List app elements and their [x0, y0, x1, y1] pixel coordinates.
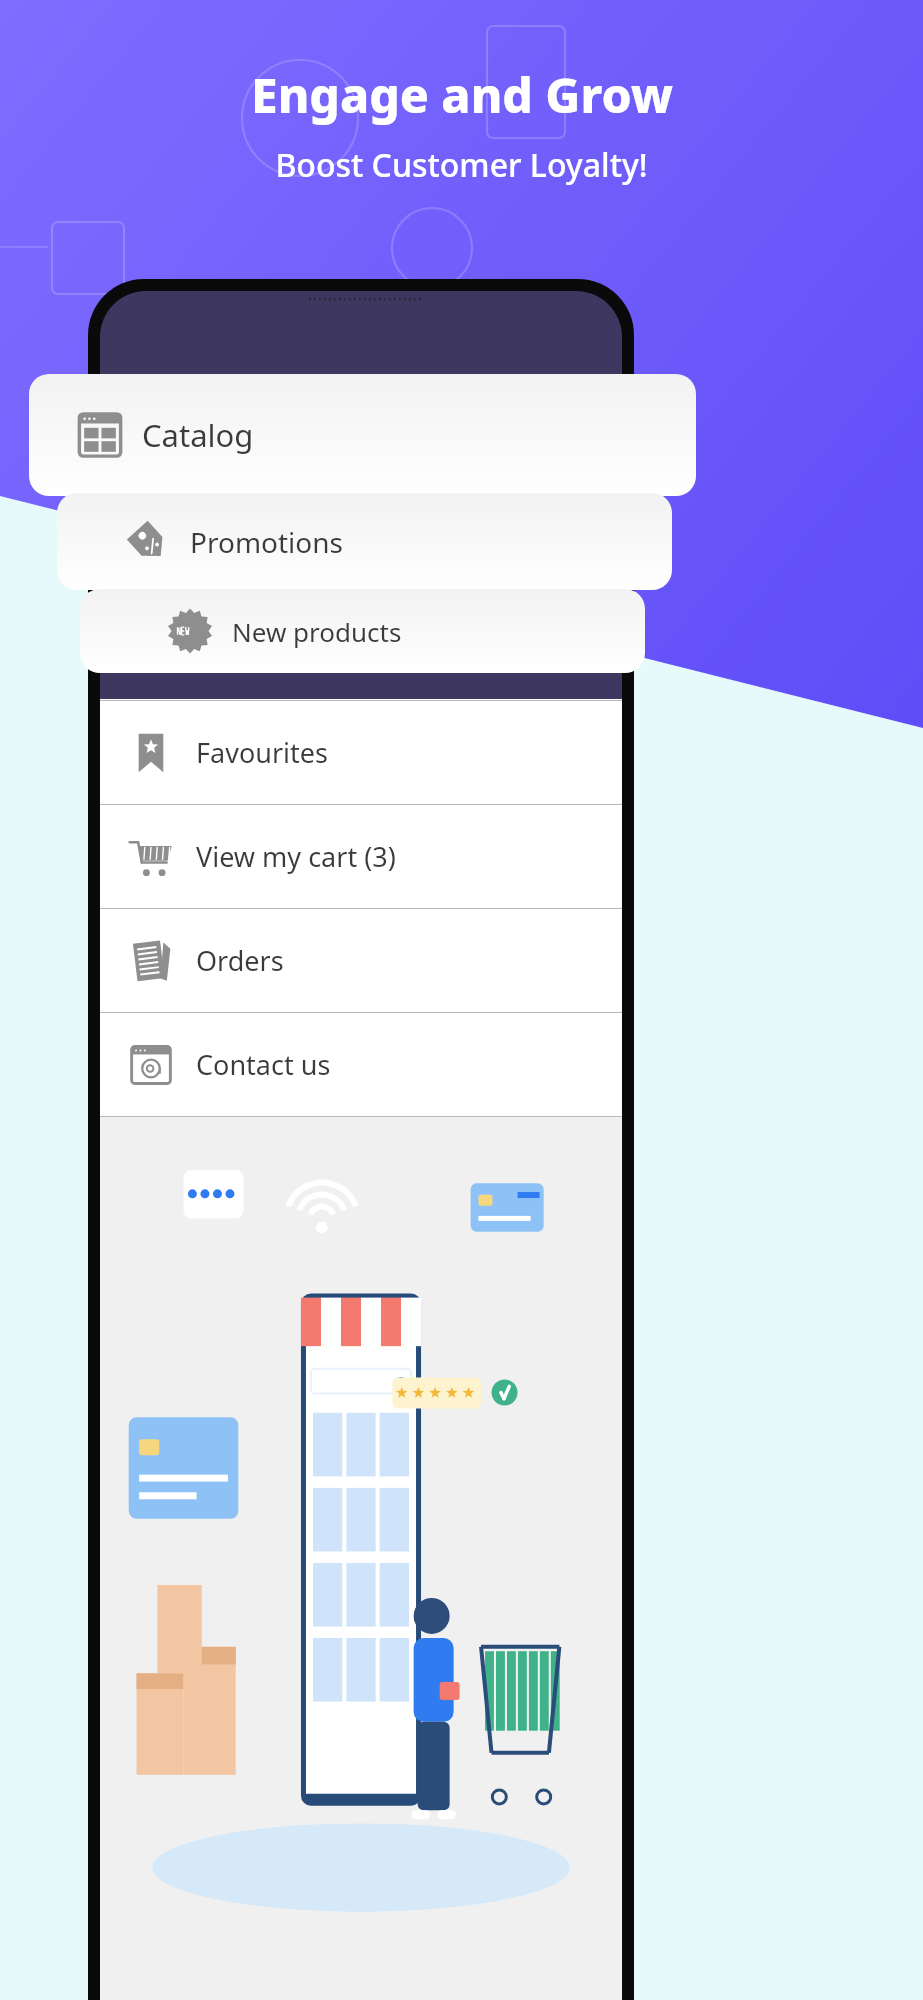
other: Favourites	[129, 731, 173, 775]
button[interactable]: Contact us	[100, 1013, 622, 1116]
staticText: New products	[232, 614, 402, 649]
button[interactable]: View my cart	[100, 805, 622, 908]
staticText: Catalog	[142, 414, 254, 456]
other: Contact us	[129, 1043, 173, 1087]
other: View my cart	[128, 834, 174, 880]
other: Orders	[129, 939, 173, 983]
staticText: Contact us	[196, 1046, 331, 1083]
other: Promotions	[123, 517, 173, 567]
other: New products	[166, 607, 214, 655]
staticText: Promotions	[190, 523, 343, 561]
staticText: Orders	[196, 942, 284, 979]
other: Catalog	[76, 411, 124, 459]
staticText: Favourites	[196, 734, 328, 771]
button[interactable]: Orders	[100, 909, 622, 1012]
button[interactable]: Catalog	[29, 374, 696, 496]
staticText: Boost Customer Loyalty!	[275, 143, 648, 187]
button[interactable]: Promotions	[57, 493, 672, 590]
staticText: View my cart (3)	[196, 838, 396, 875]
button[interactable]: Favourites	[100, 701, 622, 804]
button[interactable]: New products	[80, 589, 645, 673]
staticText: Engage and Grow	[251, 62, 673, 127]
